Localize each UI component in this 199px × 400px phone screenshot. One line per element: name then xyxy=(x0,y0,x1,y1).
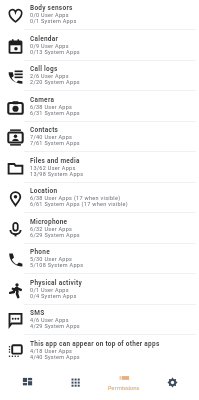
staticText: 6/61 System Apps (17 when visible) xyxy=(30,201,129,207)
staticText: Files and media xyxy=(30,157,80,165)
button[interactable]: SMS xyxy=(0,304,199,335)
staticText: 13/62 User Apps xyxy=(30,165,76,171)
button[interactable]: Phone xyxy=(0,243,199,274)
staticText: 0/9 User Apps xyxy=(30,43,69,49)
staticText: Phone xyxy=(30,248,50,256)
staticText: 13/98 System Apps xyxy=(30,171,84,177)
staticText: Physical activity xyxy=(30,279,82,287)
staticText: 6/38 User Apps xyxy=(30,104,73,110)
button[interactable]: Files and media xyxy=(0,152,199,183)
staticText: Body sensors xyxy=(30,4,73,12)
staticText: 0/4 System Apps xyxy=(30,293,77,299)
staticText: 7/61 System Apps xyxy=(30,140,80,146)
staticText: 7/40 User Apps xyxy=(30,134,73,140)
staticText: 6/31 System Apps xyxy=(30,110,80,116)
staticText: Contacts xyxy=(30,126,59,134)
staticText: 5/108 System Apps xyxy=(30,262,84,268)
staticText: Location xyxy=(30,187,58,195)
button[interactable]: Call logs xyxy=(0,60,199,91)
staticText: 0/1 User Apps xyxy=(30,287,69,293)
staticText: 6/32 User Apps xyxy=(30,226,73,232)
staticText: 2/20 System Apps xyxy=(30,79,80,85)
button[interactable]: Apps xyxy=(53,364,97,400)
button[interactable]: Dashboard xyxy=(5,364,49,400)
staticText: 4/29 System Apps xyxy=(30,323,80,329)
button[interactable]: This app can appear on top of other apps xyxy=(0,335,199,366)
button[interactable]: Microphone xyxy=(0,213,199,244)
staticText: 4/18 User Apps xyxy=(30,348,73,354)
staticText: This app can appear on top of other apps xyxy=(30,340,160,348)
staticText: 4/6 User Apps xyxy=(30,317,69,323)
button[interactable]: Settings xyxy=(150,364,194,400)
staticText: Camera xyxy=(30,96,55,104)
button[interactable]: Contacts xyxy=(0,121,199,152)
staticText: 0/1 System Apps xyxy=(30,18,77,24)
button[interactable]: Calendar xyxy=(0,30,199,61)
staticText: 4/40 System Apps xyxy=(30,354,80,360)
button[interactable]: Camera xyxy=(0,91,199,122)
staticText: SMS xyxy=(30,309,45,317)
staticText: Permissions xyxy=(108,384,140,391)
button[interactable]: Body sensors xyxy=(0,0,199,30)
staticText: Calendar xyxy=(30,35,59,43)
button[interactable]: Location xyxy=(0,182,199,213)
staticText: 5/30 User Apps xyxy=(30,256,73,262)
button[interactable]: Permissions xyxy=(102,364,146,400)
staticText: 6/29 System Apps xyxy=(30,232,80,238)
staticText: Call logs xyxy=(30,65,58,73)
button[interactable]: Physical activity xyxy=(0,274,199,305)
staticText: 2/6 User Apps xyxy=(30,73,69,79)
staticText: 6/38 User Apps (17 when visible) xyxy=(30,195,121,201)
staticText: Microphone xyxy=(30,218,68,226)
staticText: 0/13 System Apps xyxy=(30,49,80,55)
staticText: 0/0 User Apps xyxy=(30,12,69,18)
